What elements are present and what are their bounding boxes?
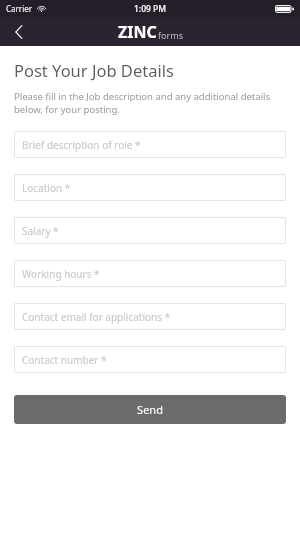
staticText: ZINC (118, 21, 157, 43)
button[interactable]: Send (14, 395, 286, 424)
button[interactable]: Working hours * (14, 260, 286, 287)
staticText: Contact email for applications * (22, 310, 171, 324)
button[interactable]: Contact email for applications * (14, 303, 286, 330)
staticText: Working hours * (22, 267, 100, 281)
staticText: Carrier (6, 3, 33, 14)
button[interactable]: Salary * (14, 217, 286, 244)
staticText: forms (158, 29, 183, 41)
button[interactable]: Back (0, 17, 38, 46)
staticText: 1:09 PM (134, 3, 167, 15)
staticText: Brief description of role * (22, 138, 141, 152)
staticText: Please fill in the Job description and a… (14, 90, 284, 116)
button[interactable]: Location * (14, 174, 286, 201)
button[interactable]: Brief description of role * (14, 131, 286, 158)
button[interactable]: Contact number * (14, 346, 286, 373)
staticText: Send (137, 402, 163, 417)
staticText: Salary * (22, 224, 59, 238)
staticText: Contact number * (22, 353, 107, 367)
staticText: Location * (22, 181, 71, 195)
staticText: Post Your Job Details (14, 59, 174, 81)
